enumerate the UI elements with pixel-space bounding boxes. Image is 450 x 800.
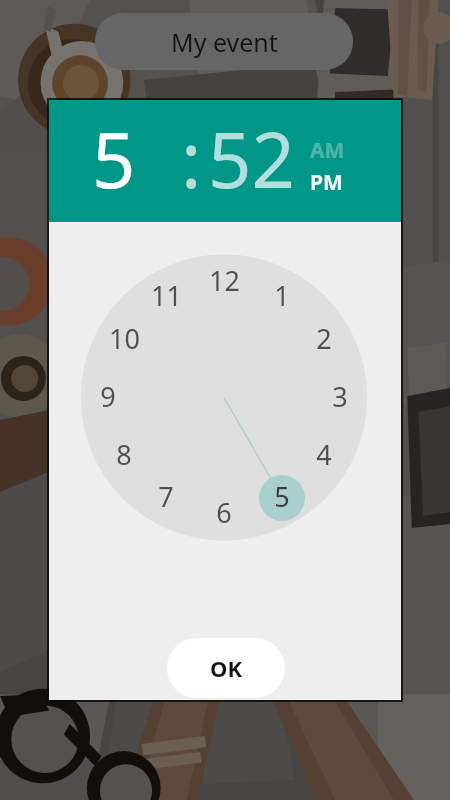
staticText: 12 bbox=[209, 262, 240, 298]
staticText: AM bbox=[310, 136, 345, 160]
button[interactable]: 8 bbox=[102, 436, 146, 472]
staticText: OK bbox=[210, 653, 243, 683]
staticText: 52 bbox=[208, 107, 295, 201]
staticText: 1 bbox=[274, 277, 290, 313]
button[interactable]: PM bbox=[310, 168, 360, 192]
staticText: PM bbox=[310, 168, 343, 192]
staticText: 10 bbox=[109, 320, 140, 356]
staticText: My event bbox=[171, 25, 278, 59]
button[interactable]: 3 bbox=[318, 378, 362, 414]
staticText: 5 bbox=[92, 107, 136, 201]
staticText: 7 bbox=[158, 478, 174, 514]
button[interactable]: 6 bbox=[202, 494, 246, 530]
staticText: 2 bbox=[316, 320, 332, 356]
button[interactable]: 12 bbox=[202, 262, 246, 298]
button[interactable]: 7 bbox=[144, 478, 188, 514]
staticText: 5 bbox=[274, 478, 290, 514]
button[interactable]: OK bbox=[167, 638, 285, 698]
staticText: 4 bbox=[316, 436, 332, 472]
button[interactable]: 4 bbox=[302, 436, 346, 472]
staticText: 3 bbox=[332, 378, 348, 414]
button[interactable]: 2 bbox=[302, 320, 346, 356]
button[interactable]: 10 bbox=[102, 320, 146, 356]
button[interactable]: 1 bbox=[260, 277, 304, 313]
staticText: 6 bbox=[216, 494, 232, 530]
button[interactable]: AM bbox=[310, 136, 360, 160]
button[interactable]: 52 bbox=[203, 107, 300, 201]
button[interactable]: 11 bbox=[144, 277, 188, 313]
button[interactable]: 5 bbox=[260, 478, 304, 514]
button[interactable]: 5 bbox=[85, 107, 143, 201]
staticText: 9 bbox=[100, 378, 116, 414]
button[interactable]: 9 bbox=[86, 378, 130, 414]
button[interactable]: My event bbox=[95, 13, 353, 70]
staticText: 8 bbox=[116, 436, 132, 472]
staticText: 11 bbox=[151, 277, 182, 313]
staticText: : bbox=[181, 107, 202, 201]
